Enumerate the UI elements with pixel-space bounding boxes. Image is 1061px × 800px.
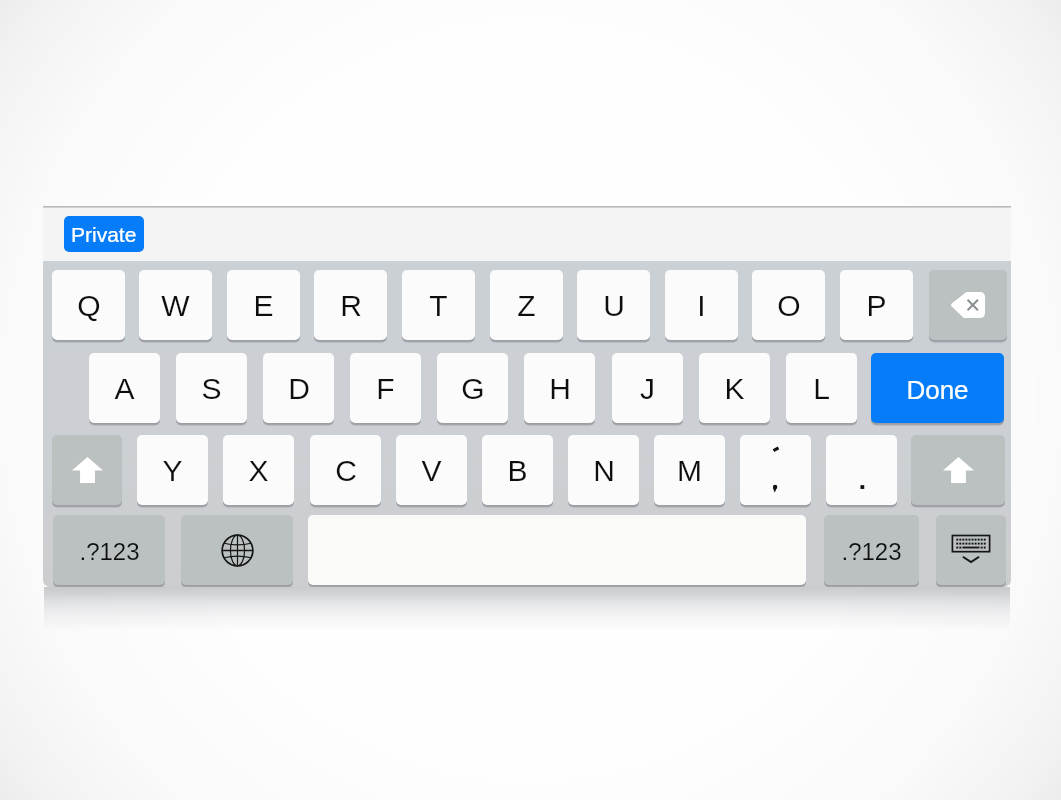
staticText: Private [71, 223, 137, 246]
button[interactable]: Hide keyboard [936, 515, 1006, 587]
staticText: F [376, 372, 395, 406]
button[interactable]: L [786, 353, 857, 426]
button[interactable]: I [665, 270, 738, 343]
button[interactable]: S [176, 353, 247, 426]
staticText: G [461, 372, 485, 406]
staticText: Y [162, 454, 183, 488]
staticText: K [724, 372, 745, 406]
staticText: Done [906, 375, 969, 404]
button[interactable]: W [139, 270, 212, 343]
button[interactable]: R [314, 270, 387, 343]
button[interactable]: Q [52, 270, 125, 343]
button[interactable]: Z [490, 270, 563, 343]
button[interactable]: Period [826, 435, 897, 508]
staticText: P [866, 289, 887, 323]
staticText: E [253, 289, 274, 323]
staticText: D [288, 372, 310, 406]
button[interactable]: F [350, 353, 421, 426]
button[interactable]: M [654, 435, 725, 508]
button[interactable]: O [752, 270, 825, 343]
button[interactable]: C [310, 435, 381, 508]
staticText: S [201, 372, 222, 406]
staticText: M [677, 454, 702, 488]
staticText: O [777, 289, 801, 323]
staticText: I [697, 289, 706, 323]
button[interactable]: B [482, 435, 553, 508]
staticText: T [429, 289, 448, 323]
staticText: A [114, 372, 135, 406]
staticText: W [161, 289, 190, 323]
button[interactable]: G [437, 353, 508, 426]
staticText: R [340, 289, 362, 323]
button[interactable]: Comma [740, 435, 811, 508]
button[interactable]: Shift [911, 435, 1005, 508]
button[interactable]: V [396, 435, 467, 508]
button[interactable]: .?123 [53, 515, 165, 587]
button[interactable]: D [263, 353, 334, 426]
button[interactable]: Shift [52, 435, 122, 508]
button[interactable]: K [699, 353, 770, 426]
button[interactable]: X [223, 435, 294, 508]
staticText: .?123 [79, 538, 140, 565]
button[interactable]: U [577, 270, 650, 343]
button[interactable]: N [568, 435, 639, 508]
staticText: B [507, 454, 528, 488]
button[interactable]: A [89, 353, 160, 426]
staticText: X [248, 454, 269, 488]
button[interactable]: Done [871, 353, 1004, 426]
staticText: J [640, 372, 655, 406]
button[interactable]: E [227, 270, 300, 343]
staticText: .?123 [841, 538, 902, 565]
staticText: Z [517, 289, 536, 323]
button[interactable]: Space [308, 515, 806, 587]
staticText: V [421, 454, 442, 488]
staticText: C [335, 454, 357, 488]
button[interactable]: H [524, 353, 595, 426]
button[interactable]: Y [137, 435, 208, 508]
staticText: L [813, 372, 830, 406]
staticText: N [593, 454, 615, 488]
staticText: Q [77, 289, 101, 323]
button[interactable]: .?123 [824, 515, 919, 587]
staticText: U [603, 289, 625, 323]
button[interactable]: Next keyboard [181, 515, 293, 587]
button[interactable]: Private [64, 216, 144, 252]
button[interactable]: J [612, 353, 683, 426]
staticText: H [549, 372, 571, 406]
button[interactable]: P [840, 270, 913, 343]
button[interactable]: T [402, 270, 475, 343]
button[interactable]: Backspace [929, 270, 1007, 343]
